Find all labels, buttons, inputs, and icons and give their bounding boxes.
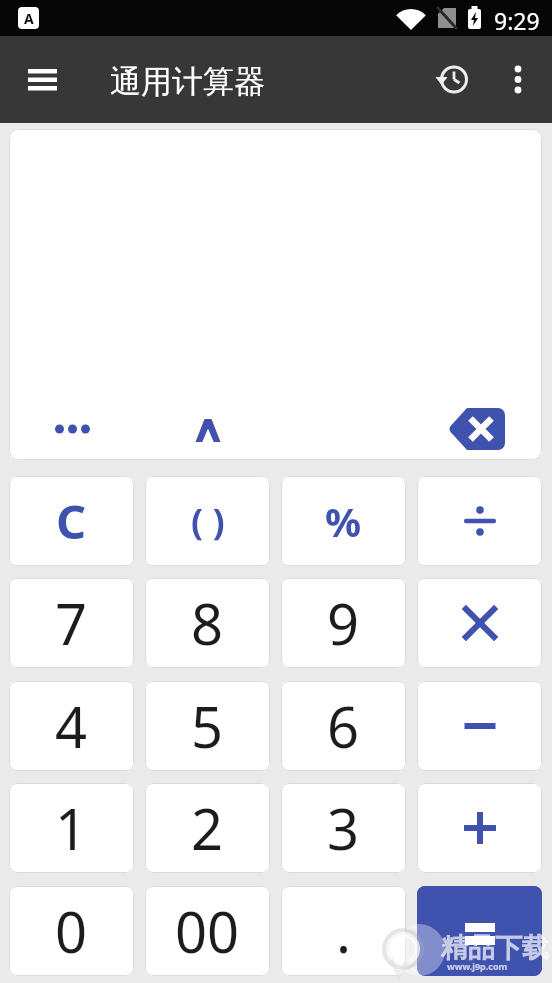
staticText: 精品下载 [441, 931, 549, 965]
staticText: 4 [55, 688, 88, 764]
button[interactable] [417, 578, 542, 668]
button[interactable]: . [281, 886, 406, 976]
staticText: 8 [191, 585, 224, 661]
staticText: 通用计算器 [110, 62, 265, 101]
staticText: ( ) [191, 497, 225, 546]
button[interactable]: C [9, 476, 134, 566]
button[interactable] [498, 58, 538, 102]
button[interactable]: 3 [281, 783, 406, 873]
button[interactable] [417, 886, 542, 976]
button[interactable]: 7 [9, 578, 134, 668]
staticText: 00 [175, 893, 240, 969]
button[interactable]: ( ) [145, 476, 270, 566]
staticText: . [336, 893, 352, 969]
button[interactable]: 5 [145, 681, 270, 771]
staticText: C [56, 489, 87, 553]
staticText: 6 [327, 688, 360, 764]
staticText: A [24, 9, 34, 28]
button[interactable]: 2 [145, 783, 270, 873]
staticText: 0 [55, 893, 88, 969]
button[interactable] [446, 402, 510, 456]
staticText: 5 [191, 688, 224, 764]
button[interactable] [432, 58, 476, 102]
button[interactable] [417, 783, 542, 873]
staticText: 1 [55, 790, 88, 866]
button[interactable]: % [281, 476, 406, 566]
button[interactable]: 1 [9, 783, 134, 873]
button[interactable] [417, 476, 542, 566]
button[interactable]: 00 [145, 886, 270, 976]
staticText: 7 [55, 585, 88, 661]
staticText: 9:29 [494, 5, 540, 36]
staticText: 9 [327, 585, 360, 661]
button[interactable]: 8 [145, 578, 270, 668]
staticText: 2 [191, 790, 224, 866]
button[interactable]: 4 [9, 681, 134, 771]
button[interactable]: 6 [281, 681, 406, 771]
staticText: www.j9p.com [447, 960, 508, 972]
button[interactable]: 0 [9, 886, 134, 976]
button[interactable] [178, 405, 236, 451]
button[interactable] [40, 405, 104, 451]
button[interactable] [18, 59, 68, 101]
staticText: 3 [327, 790, 360, 866]
button[interactable] [417, 681, 542, 771]
staticText: % [325, 494, 362, 548]
button[interactable]: 9 [281, 578, 406, 668]
